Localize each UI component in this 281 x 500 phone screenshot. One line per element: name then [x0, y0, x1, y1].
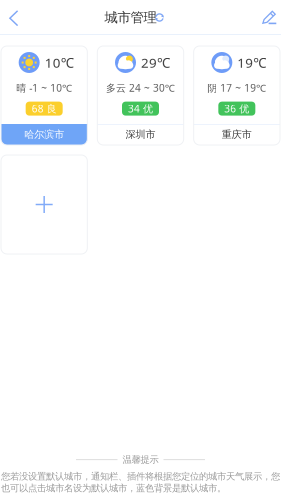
- staticText: 温馨提示: [122, 454, 158, 465]
- staticText: 多云 24 ~ 30℃: [106, 81, 175, 95]
- staticText: 哈尔滨市: [24, 128, 64, 141]
- staticText: 阴 17 ~ 19℃: [207, 81, 266, 95]
- staticText: 29℃: [141, 53, 170, 72]
- staticText: 19℃: [237, 53, 266, 72]
- staticText: 10℃: [45, 53, 74, 72]
- button[interactable]: 19℃: [194, 46, 280, 145]
- button[interactable]: Back: [0, 0, 30, 36]
- button[interactable]: 29℃: [97, 46, 184, 145]
- button[interactable]: 10℃: [1, 46, 87, 145]
- staticText: 晴 -1 ~ 10℃: [16, 81, 72, 95]
- staticText: 您若没设置默认城市，通知栏、插件将根据您定位的城市天气展示，您也可以点击城市名设…: [1, 470, 280, 494]
- staticText: 城市管理: [104, 9, 156, 26]
- staticText: 重庆市: [222, 128, 252, 141]
- staticText: 34 优: [128, 102, 153, 115]
- button[interactable]: Edit: [251, 0, 281, 35]
- staticText: 深圳市: [125, 128, 155, 141]
- staticText: 36 优: [224, 102, 249, 115]
- staticText: 68 良: [32, 102, 57, 115]
- button[interactable]: Add city: [1, 155, 87, 254]
